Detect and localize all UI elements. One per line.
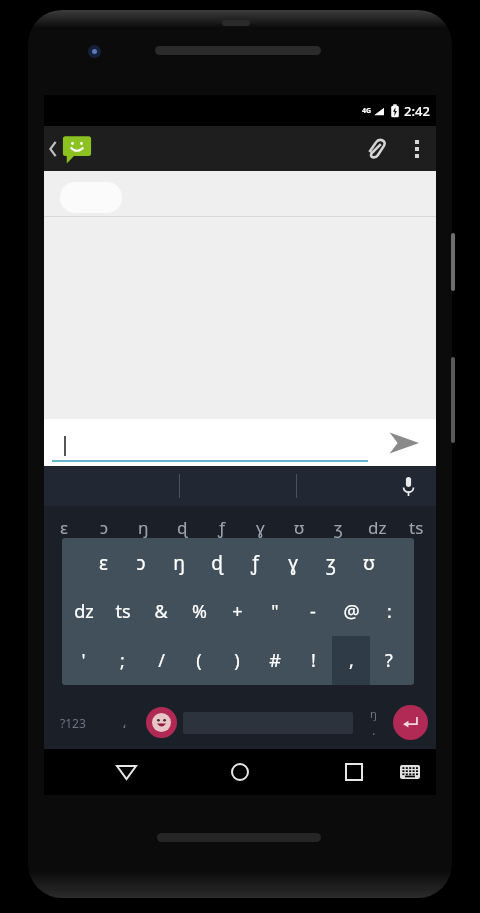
button[interactable]: /	[142, 636, 180, 685]
staticText: ɖ	[211, 550, 223, 576]
staticText: ʊ	[294, 516, 305, 539]
staticText: ʒ	[334, 516, 343, 539]
staticText: "	[271, 599, 279, 624]
staticText: 2:42	[404, 102, 430, 120]
button[interactable]: (	[180, 636, 218, 685]
staticText: ŋ	[173, 550, 185, 576]
button[interactable]: ƒ	[202, 506, 241, 548]
button[interactable]: '	[64, 636, 103, 685]
staticText: dz	[74, 599, 94, 624]
staticText: !	[311, 648, 316, 673]
staticText: ƒ	[218, 516, 226, 539]
button[interactable]: @	[332, 587, 370, 636]
staticText: '	[81, 648, 86, 673]
button[interactable]: Switch keyboard	[388, 750, 432, 794]
button[interactable]: ɖ	[198, 538, 236, 587]
staticText: ŋ	[138, 516, 149, 539]
staticText: 4G	[362, 106, 372, 116]
button[interactable]: ;	[103, 636, 142, 685]
button[interactable]: -	[294, 587, 332, 636]
button[interactable]: Recent apps	[332, 750, 376, 794]
staticText: ɔ	[100, 516, 109, 539]
button[interactable]: :	[370, 587, 408, 636]
button[interactable]: Home	[218, 750, 262, 794]
staticText: ts	[115, 599, 131, 624]
staticText: ŋ	[370, 706, 377, 721]
staticText: (	[196, 648, 202, 673]
button[interactable]: ε	[44, 506, 84, 548]
staticText: .	[372, 721, 376, 739]
button[interactable]: Voice input	[390, 468, 426, 504]
button[interactable]: "	[256, 587, 294, 636]
button[interactable]: ƒ	[236, 538, 274, 587]
button[interactable]: !	[294, 636, 332, 685]
button[interactable]: ʊ	[350, 538, 388, 587]
button[interactable]: %	[180, 587, 218, 636]
button[interactable]: ŋ	[124, 506, 163, 548]
staticText: ƒ	[251, 550, 259, 576]
staticText: +	[232, 599, 243, 624]
button[interactable]: ?	[370, 636, 408, 685]
staticText: ،	[122, 715, 127, 731]
button[interactable]: dz	[358, 506, 397, 548]
staticText: ?123	[60, 715, 86, 731]
button[interactable]: #	[256, 636, 294, 685]
staticText: ɔ	[136, 550, 146, 576]
staticText: :	[387, 599, 392, 624]
button[interactable]: ɖ	[163, 506, 202, 548]
staticText: ʒ	[326, 550, 336, 576]
button[interactable]: ?123	[44, 696, 102, 749]
button[interactable]: ŋ	[353, 696, 393, 749]
staticText: ε	[60, 516, 68, 539]
staticText: )	[234, 648, 240, 673]
button[interactable]: ts	[103, 587, 142, 636]
staticText: ʊ	[363, 550, 375, 576]
button[interactable]: ʒ	[312, 538, 350, 587]
button[interactable]: &	[142, 587, 180, 636]
button[interactable]: +	[218, 587, 256, 636]
staticText: ɣ	[256, 516, 265, 539]
button[interactable]: ɣ	[241, 506, 280, 548]
staticText: %	[192, 599, 207, 624]
button[interactable]	[60, 182, 122, 213]
staticText: ε	[99, 550, 108, 576]
button[interactable]: Emoji	[146, 707, 177, 738]
button[interactable]: ,	[332, 636, 370, 685]
staticText: -	[310, 599, 316, 624]
button[interactable]: Back	[104, 750, 148, 794]
button[interactable]: More options	[398, 130, 436, 168]
button[interactable]: ts	[397, 506, 436, 548]
staticText: &	[154, 599, 168, 624]
button[interactable]: ŋ	[160, 538, 198, 587]
staticText: @	[343, 599, 360, 624]
button[interactable]: ʒ	[319, 506, 358, 548]
button[interactable]: ɔ	[122, 538, 160, 587]
button[interactable]: ʊ	[280, 506, 319, 548]
staticText: ɣ	[288, 550, 298, 576]
button[interactable]: dz	[64, 587, 103, 636]
button[interactable]: Attach	[354, 127, 398, 171]
staticText: ;	[120, 648, 125, 673]
staticText: #	[269, 648, 281, 673]
staticText: ts	[409, 516, 424, 539]
button[interactable]: ɣ	[274, 538, 312, 587]
button[interactable]: Navigate up	[44, 133, 93, 165]
button[interactable]: ε	[84, 538, 122, 587]
button[interactable]: Send	[382, 421, 426, 465]
button[interactable]: ،	[102, 696, 146, 749]
staticText: /	[158, 648, 165, 673]
staticText: ?	[385, 648, 393, 673]
staticText: ,	[349, 648, 354, 673]
button[interactable]: Enter	[393, 705, 428, 740]
button[interactable]: )	[218, 636, 256, 685]
staticText: dz	[368, 516, 387, 539]
button[interactable]: ɔ	[84, 506, 124, 548]
staticText: ɖ	[177, 516, 188, 539]
